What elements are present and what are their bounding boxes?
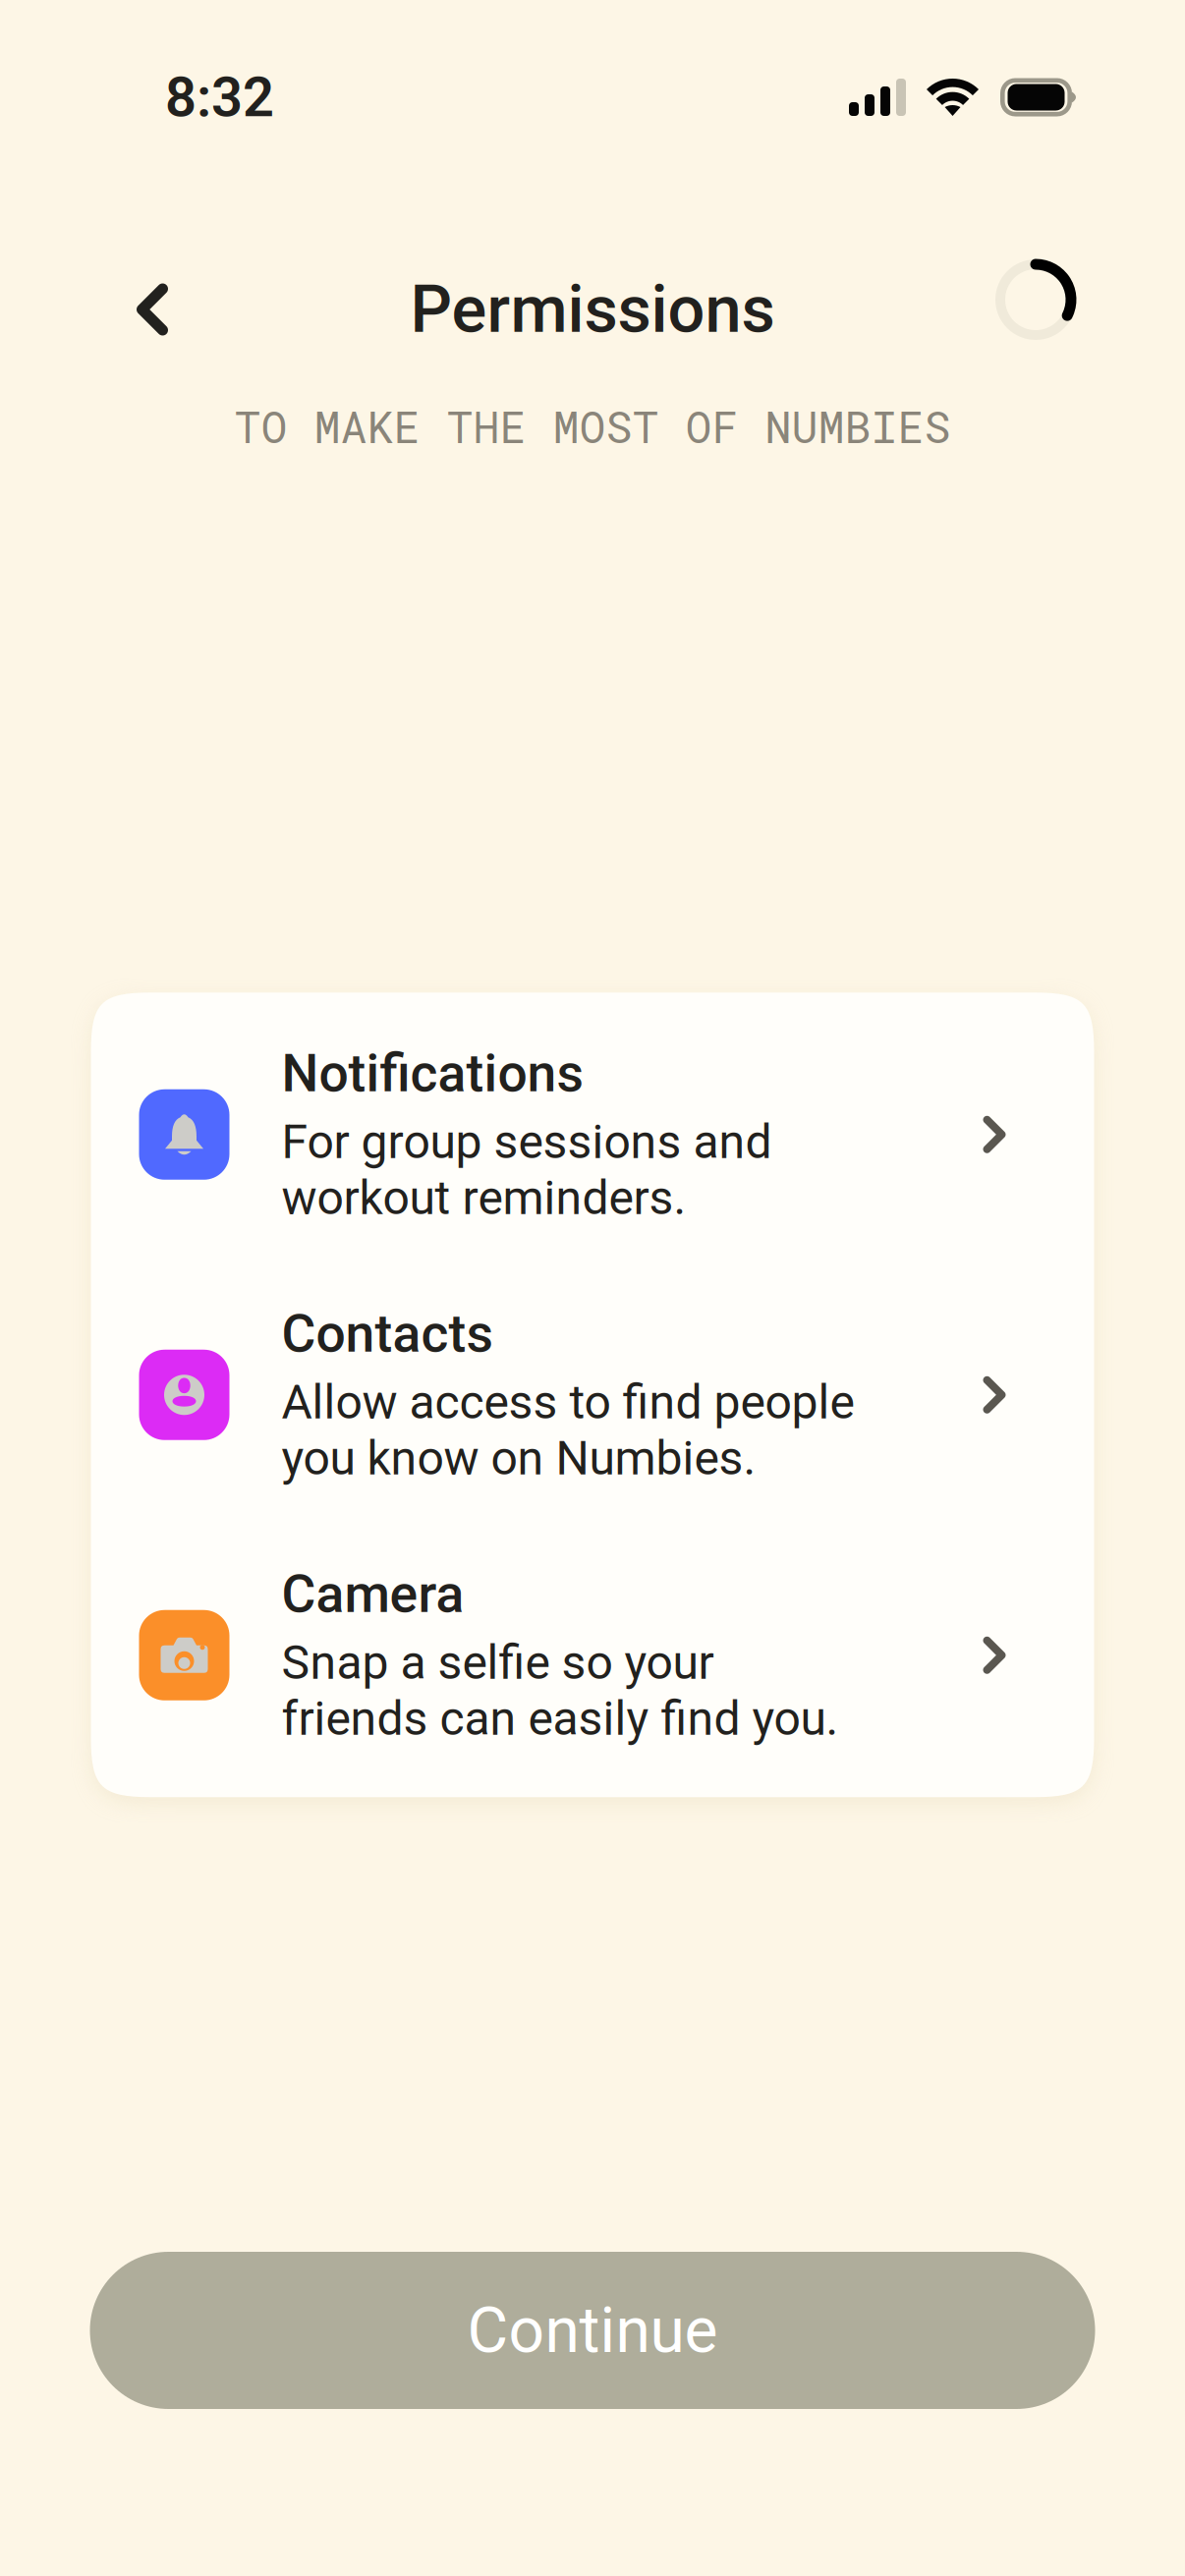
staticText: friends can easily find you. [282,1691,839,1746]
button[interactable]: Contacts [91,1265,1094,1525]
button[interactable]: Notifications [91,1004,1094,1265]
staticText: Snap a selfie so your [282,1635,714,1690]
staticText: Continue [467,2294,718,2367]
staticText: 8:32 [165,65,274,129]
staticText: workout reminders. [282,1170,686,1226]
staticText: TO MAKE THE MOST OF NUMBIES [234,397,951,455]
button[interactable]: Back [105,262,199,357]
staticText: Contacts [282,1303,493,1364]
staticText: Notifications [282,1043,583,1104]
button[interactable]: Camera [91,1525,1094,1785]
staticText: you know on Numbies. [282,1431,756,1486]
staticText: For group sessions and [282,1114,772,1170]
staticText: Permissions [410,271,775,348]
staticText: Allow access to find people [282,1375,854,1430]
button[interactable]: Continue [90,2252,1095,2409]
staticText: Camera [282,1563,464,1625]
